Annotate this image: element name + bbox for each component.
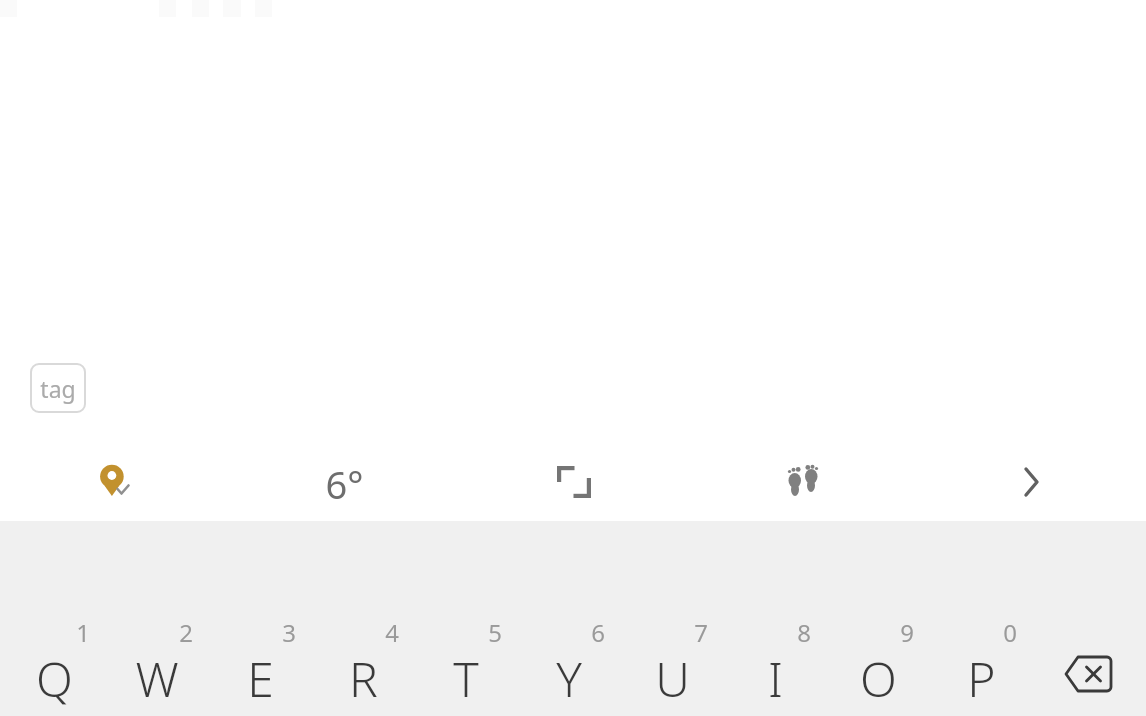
button[interactable]: [0, 458, 230, 506]
staticText: 6: [591, 616, 605, 649]
staticText: 3: [282, 616, 296, 649]
staticText: R: [349, 646, 378, 711]
staticText: 4: [385, 616, 399, 649]
staticText: 5: [488, 616, 502, 649]
button[interactable]: [688, 458, 917, 506]
button[interactable]: T: [414, 616, 518, 716]
staticText: E: [247, 646, 274, 711]
staticText: 6°: [325, 458, 364, 506]
staticText: T: [453, 646, 479, 711]
staticText: 8: [797, 616, 811, 649]
button[interactable]: P: [929, 616, 1033, 716]
button[interactable]: W: [105, 616, 209, 716]
button[interactable]: tag: [30, 363, 86, 413]
button[interactable]: [917, 458, 1146, 506]
staticText: P: [967, 646, 996, 711]
button[interactable]: [1037, 616, 1141, 716]
staticText: 0: [1003, 616, 1017, 649]
staticText: W: [135, 646, 179, 711]
staticText: O: [860, 646, 897, 711]
button[interactable]: R: [311, 616, 415, 716]
button[interactable]: E: [208, 616, 312, 716]
staticText: tag: [40, 373, 76, 404]
button[interactable]: Q: [2, 616, 106, 716]
staticText: 2: [179, 616, 193, 649]
button[interactable]: I: [723, 616, 827, 716]
staticText: 1: [76, 616, 90, 649]
staticText: I: [768, 646, 783, 711]
staticText: 9: [900, 616, 914, 649]
staticText: U: [655, 646, 690, 711]
button[interactable]: 6°: [230, 458, 459, 506]
button[interactable]: [459, 458, 688, 506]
staticText: Q: [36, 646, 73, 711]
button[interactable]: U: [620, 616, 724, 716]
button[interactable]: Y: [517, 616, 621, 716]
staticText: 7: [694, 616, 708, 649]
button[interactable]: O: [826, 616, 930, 716]
staticText: Y: [556, 646, 582, 711]
